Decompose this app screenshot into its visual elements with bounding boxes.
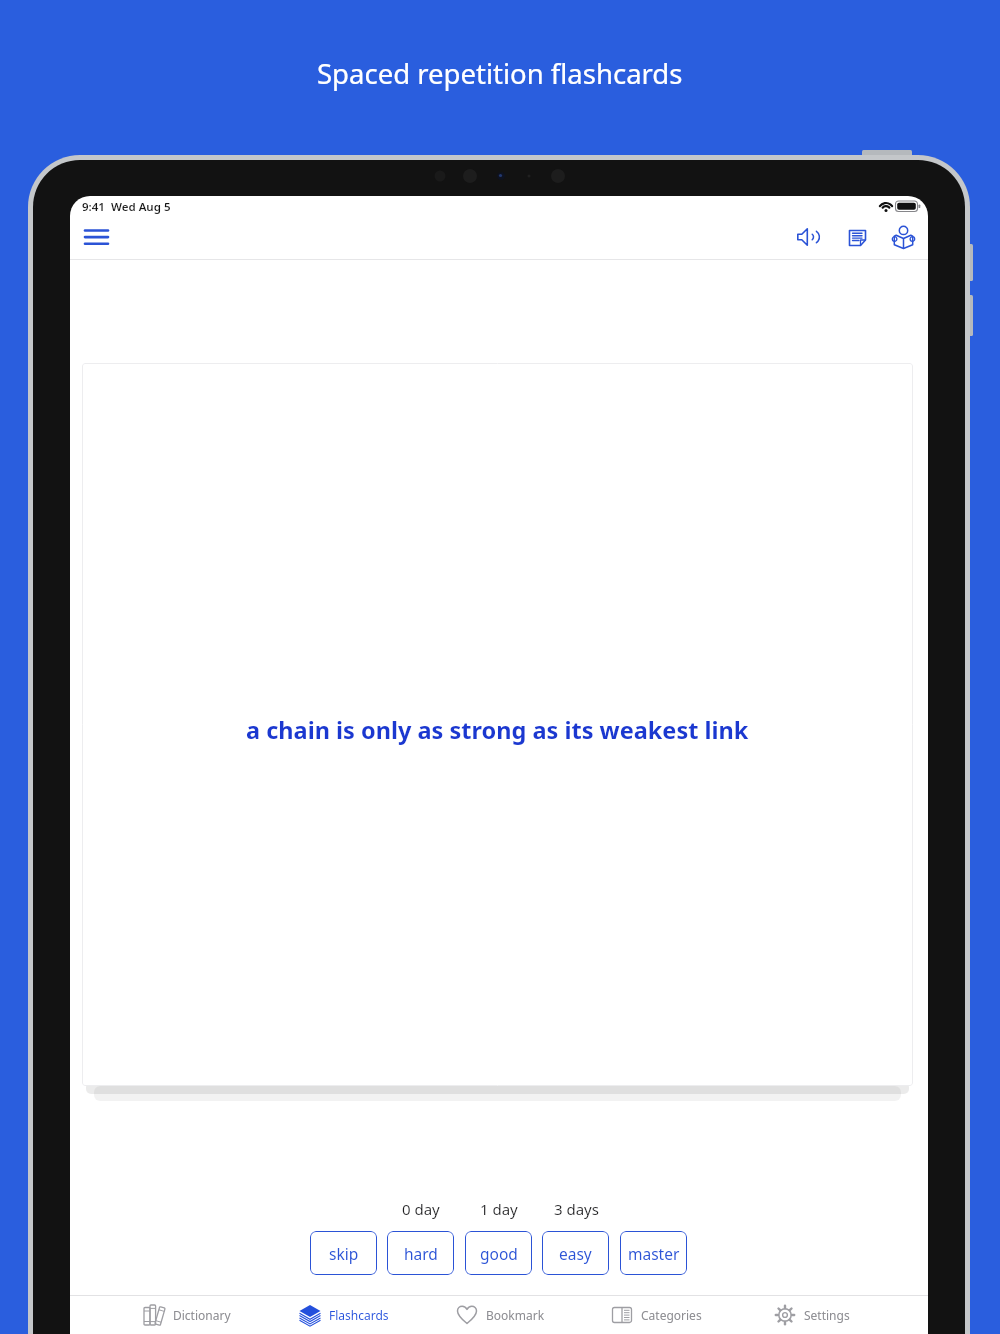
staticText: 1 day [480,1199,518,1219]
staticText: Bookmark [486,1307,545,1323]
staticText: Dictionary [173,1307,231,1323]
staticText: Spaced repetition flashcards [317,55,683,92]
button[interactable]: skip [310,1231,377,1275]
button[interactable]: hard [387,1231,454,1275]
staticText: Wed Aug 5 [111,199,171,215]
button[interactable]: Bookmark [422,1296,578,1334]
staticText: 3 days [554,1199,599,1219]
button[interactable]: a chain is only as strong as its weakest… [82,363,913,1086]
staticText: good [480,1243,518,1264]
staticText: Settings [804,1307,850,1323]
button[interactable] [78,222,114,252]
staticText: Categories [641,1307,702,1323]
button[interactable]: Flashcards [265,1296,422,1334]
staticText: Flashcards [329,1307,389,1323]
staticText: master [628,1243,680,1264]
staticText: a chain is only as strong as its weakest… [246,714,749,746]
button[interactable]: Categories [578,1296,734,1334]
button[interactable]: easy [542,1231,609,1275]
button[interactable]: master [620,1231,687,1275]
staticText: 9:41 [82,199,105,215]
staticText: easy [559,1243,592,1264]
button[interactable]: good [465,1231,532,1275]
button[interactable] [889,223,917,251]
button[interactable] [794,223,822,251]
staticText: skip [329,1243,359,1264]
button[interactable]: Settings [734,1296,890,1334]
staticText: 0 day [402,1199,440,1219]
button[interactable]: Dictionary [108,1296,265,1334]
button[interactable] [843,223,871,251]
staticText: hard [404,1243,438,1264]
